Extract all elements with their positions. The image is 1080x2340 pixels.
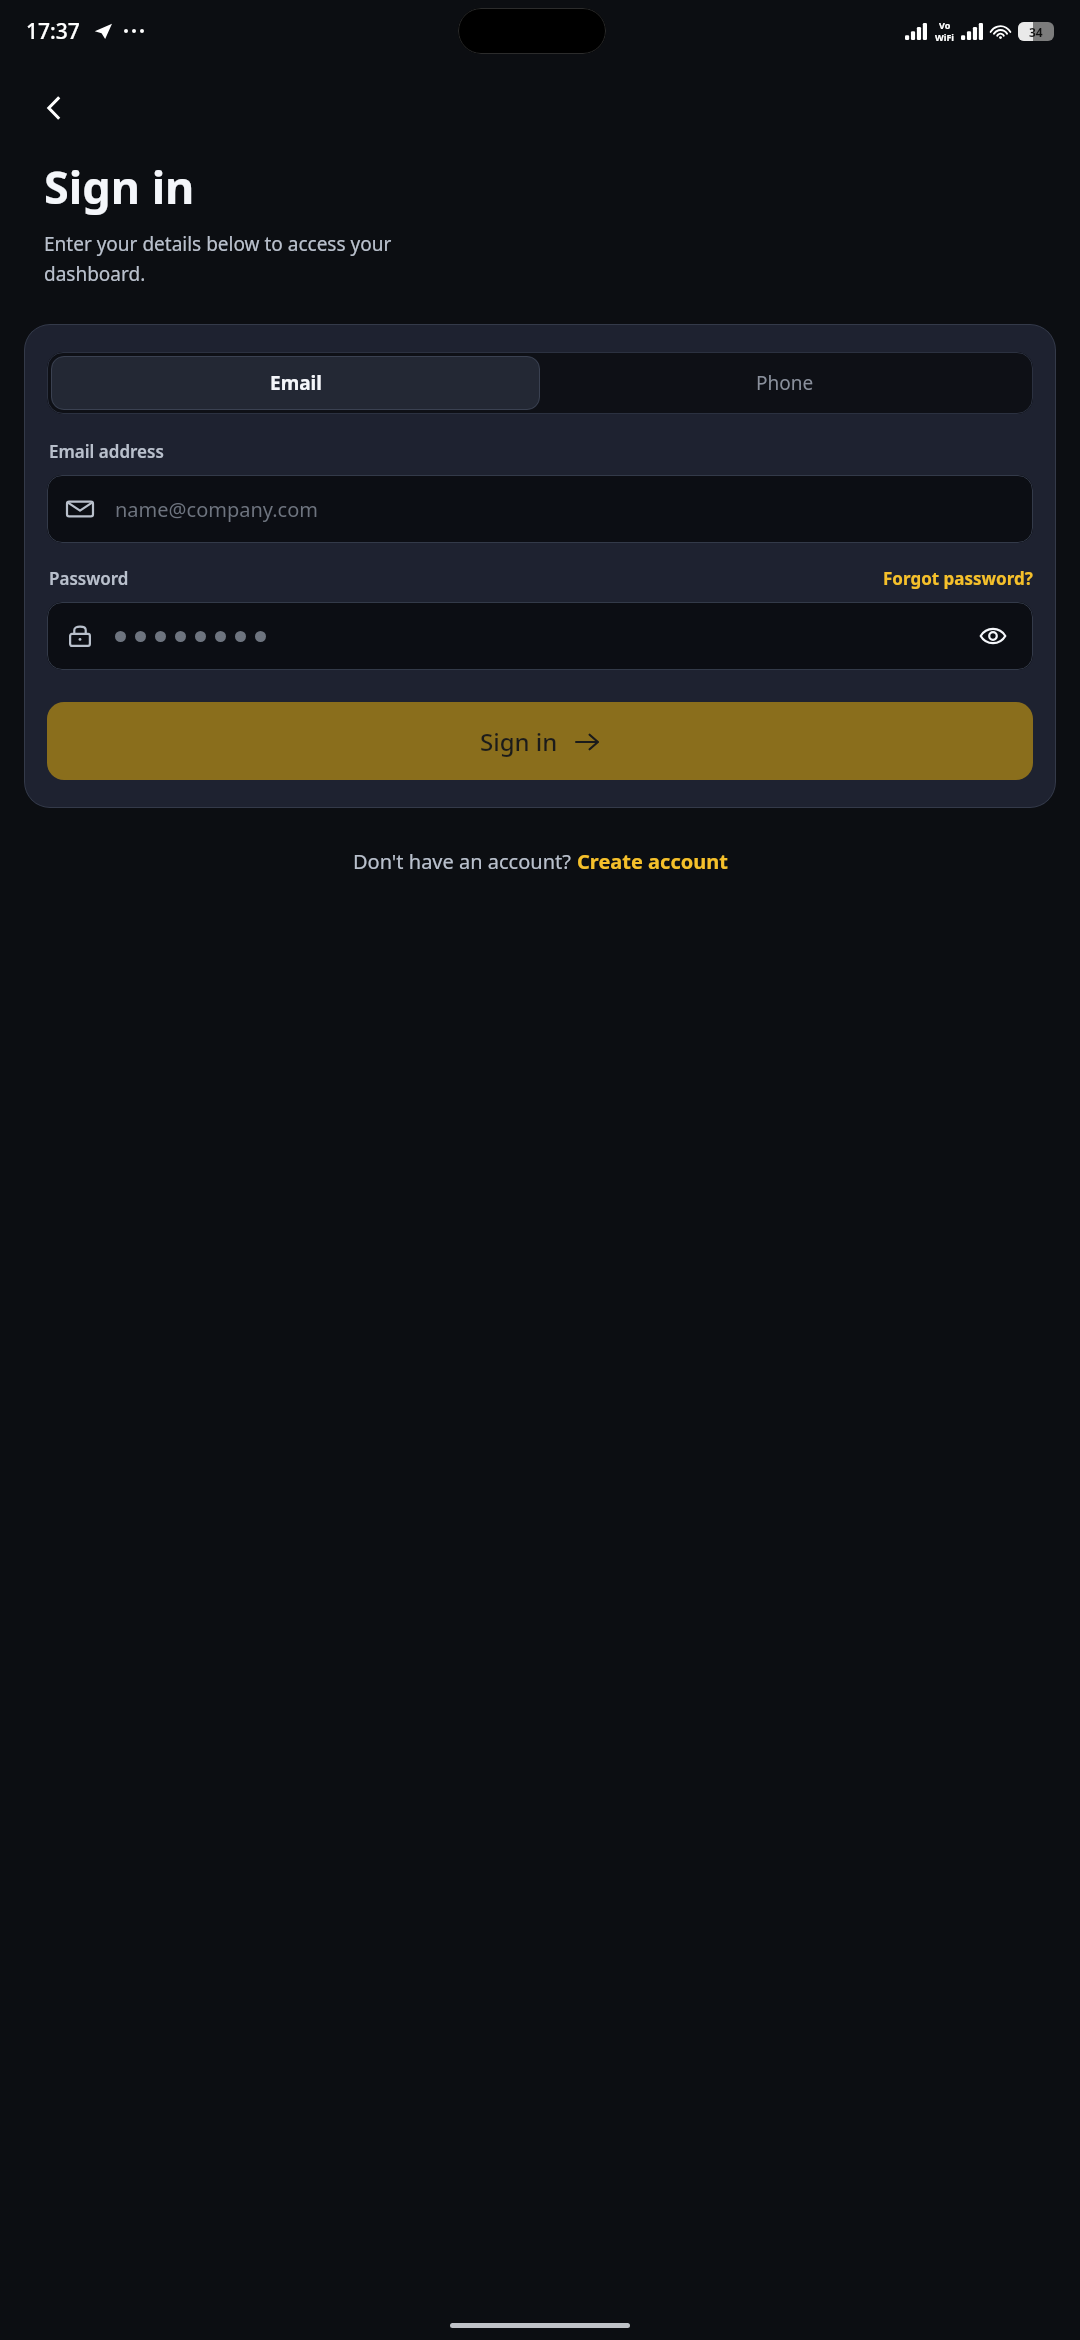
staticText: Enter your details below to access your … bbox=[44, 231, 392, 286]
button[interactable]: Sign in bbox=[47, 702, 1033, 780]
staticText: name@company.com bbox=[115, 496, 318, 523]
staticText: Sign in bbox=[44, 156, 195, 217]
button[interactable]: name@company.com bbox=[47, 475, 1033, 543]
staticText: Vo bbox=[939, 19, 951, 31]
staticText: 34 bbox=[1029, 24, 1043, 40]
button[interactable]: Create account bbox=[577, 848, 728, 875]
staticText: Forgot password? bbox=[883, 567, 1033, 590]
staticText: Password bbox=[49, 567, 129, 590]
button[interactable]: Email bbox=[51, 356, 540, 410]
staticText: Email bbox=[270, 370, 322, 396]
staticText: Phone bbox=[756, 370, 814, 396]
button[interactable]: Back bbox=[30, 84, 78, 132]
button[interactable]: Show password bbox=[973, 616, 1013, 656]
button[interactable]: Forgot password? bbox=[883, 567, 1033, 590]
button[interactable]: Show password bbox=[47, 602, 1033, 670]
staticText: Email address bbox=[49, 440, 164, 463]
staticText: Sign in bbox=[480, 725, 558, 758]
staticText: WiFi bbox=[935, 31, 955, 43]
staticText: Create account bbox=[577, 848, 728, 875]
staticText: 17:37 bbox=[26, 17, 80, 46]
staticText: Don't have an account? bbox=[353, 848, 577, 875]
button[interactable]: Phone bbox=[540, 356, 1029, 410]
